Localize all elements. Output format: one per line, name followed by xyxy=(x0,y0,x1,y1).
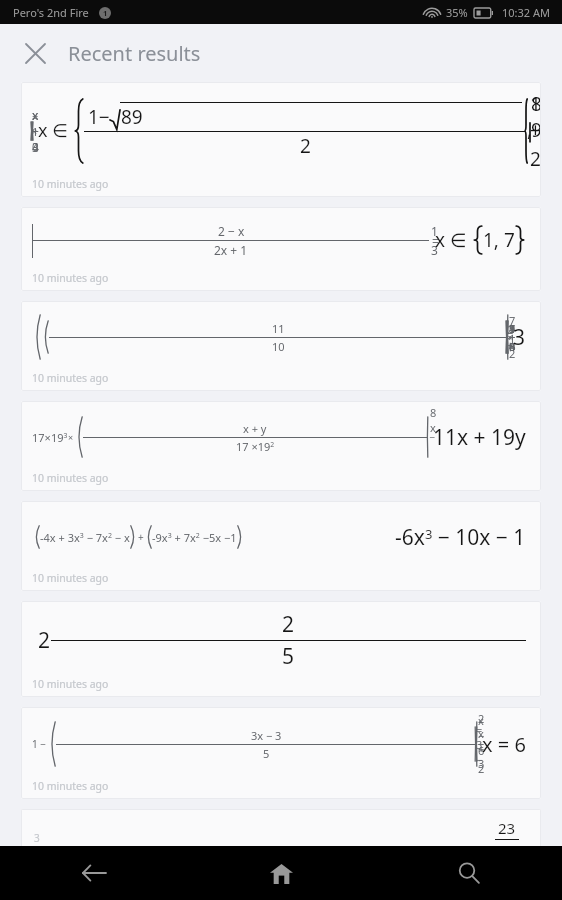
staticText: 89 xyxy=(121,104,143,130)
staticText: 2 xyxy=(300,133,311,159)
button[interactable]: 11 xyxy=(21,301,541,391)
staticText: 1 xyxy=(103,8,108,18)
staticText: 17 ×192 xyxy=(236,439,275,454)
button[interactable]: Home xyxy=(188,846,375,900)
staticText: 2 − x xyxy=(218,223,245,239)
staticText: 2 xyxy=(282,610,295,639)
button[interactable]: Search xyxy=(375,846,562,900)
staticText: 10 minutes ago xyxy=(32,371,109,385)
button[interactable]: Close xyxy=(16,34,54,72)
staticText: 5 xyxy=(263,746,270,761)
staticText: x + y xyxy=(243,421,267,436)
staticText: 3x − 3 xyxy=(251,728,282,743)
staticText: 2x + 1 xyxy=(214,242,248,258)
staticText: 10:32 AM xyxy=(502,5,550,20)
button[interactable]: 1 − xyxy=(21,707,541,799)
staticText: x = 6 xyxy=(482,731,526,758)
staticText: x ∈ xyxy=(38,118,73,143)
button[interactable]: 2 − x xyxy=(21,207,541,291)
staticText: 23 xyxy=(498,818,516,838)
staticText: 10 xyxy=(272,339,285,354)
staticText: 3 xyxy=(513,323,526,352)
staticText: -6x3 − 10x − 1 xyxy=(395,523,526,552)
staticText: + xyxy=(138,530,144,544)
staticText: 17×193 xyxy=(32,430,68,445)
staticText: 10 minutes ago xyxy=(32,571,109,585)
button[interactable]: 17×193 xyxy=(21,401,541,491)
button[interactable]: 3 xyxy=(21,809,541,846)
button[interactable]: 0.5 + 0.07 + 0.006 xyxy=(21,601,541,697)
staticText: Pero's 2nd Fire xyxy=(13,5,89,20)
staticText: 10 minutes ago xyxy=(32,177,109,191)
staticText: 3 xyxy=(34,831,40,845)
button[interactable]: x + 3 xyxy=(21,82,541,197)
button[interactable]: Back xyxy=(0,846,188,900)
staticText: 1 − xyxy=(32,737,47,751)
staticText: -4x + 3x3 − 7x2 − x xyxy=(40,530,130,545)
staticText: 10 minutes ago xyxy=(32,677,109,691)
button[interactable]: -4x + 3x3 − 7x2 − x xyxy=(21,501,541,591)
staticText: 35% xyxy=(446,5,468,20)
staticText: 1− xyxy=(88,104,110,130)
staticText: 10 minutes ago xyxy=(32,779,109,793)
staticText: 10 minutes ago xyxy=(32,271,109,285)
staticText: 11x + 19y xyxy=(433,423,526,452)
staticText: Recent results xyxy=(68,40,201,67)
staticText: -9x3 + 7x2 −5x −1 xyxy=(152,530,237,545)
staticText: × xyxy=(68,431,74,443)
staticText: 5 xyxy=(282,642,295,671)
staticText: 10 minutes ago xyxy=(32,471,109,485)
staticText: 11 xyxy=(272,321,285,336)
staticText: x ∈ xyxy=(435,227,472,253)
staticText: 1, 7 xyxy=(483,227,515,253)
staticText: 2 xyxy=(38,626,51,655)
